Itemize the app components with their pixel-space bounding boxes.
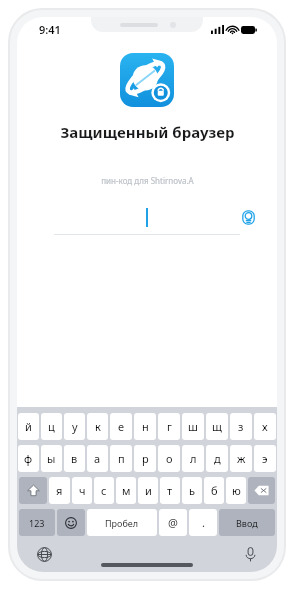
staticText: у xyxy=(72,419,78,434)
staticText: ь xyxy=(189,483,195,498)
button[interactable]: Сменить язык xyxy=(33,543,55,565)
staticText: б xyxy=(211,483,218,498)
staticText: х xyxy=(262,419,268,434)
button[interactable]: й xyxy=(18,413,39,440)
staticText: р xyxy=(142,451,149,466)
staticText: и xyxy=(145,483,152,498)
staticText: ф xyxy=(24,451,33,466)
button[interactable]: ы xyxy=(41,445,62,472)
staticText: Пробел xyxy=(105,517,139,529)
staticText: ш xyxy=(188,419,198,434)
staticText: л xyxy=(190,451,197,466)
button[interactable]: ф xyxy=(18,445,39,472)
staticText: п xyxy=(118,451,125,466)
button[interactable]: Эмодзи xyxy=(57,509,85,536)
button[interactable]: м xyxy=(116,477,136,504)
staticText: 123 xyxy=(29,517,45,529)
button[interactable]: л xyxy=(182,445,204,472)
staticText: Ввод xyxy=(236,517,258,529)
staticText: о xyxy=(166,451,173,466)
button[interactable]: ь xyxy=(182,477,202,504)
staticText: г xyxy=(167,419,172,434)
button[interactable]: Ввод xyxy=(219,509,275,536)
staticText: э xyxy=(262,451,268,466)
staticText: ж xyxy=(237,451,246,466)
staticText: Защищенный браузер xyxy=(60,122,235,142)
button[interactable]: ж xyxy=(230,445,252,472)
button[interactable]: х xyxy=(254,413,276,440)
staticText: е xyxy=(118,419,125,434)
button[interactable]: э xyxy=(254,445,276,472)
staticText: @ xyxy=(168,515,178,530)
button[interactable]: Биометрия xyxy=(237,206,259,228)
staticText: ц xyxy=(48,419,55,434)
staticText: пин-код для Shtirnova.A xyxy=(101,175,194,186)
staticText: я xyxy=(56,483,63,498)
button[interactable]: Пробел xyxy=(87,509,157,536)
button[interactable]: @ xyxy=(159,509,187,536)
button[interactable]: к xyxy=(87,413,108,440)
button[interactable]: т xyxy=(160,477,180,504)
button[interactable]: у xyxy=(64,413,85,440)
staticText: в xyxy=(71,451,78,466)
button[interactable]: ю xyxy=(226,477,246,504)
button[interactable]: ц xyxy=(41,413,62,440)
button[interactable]: ч xyxy=(72,477,92,504)
staticText: н xyxy=(142,419,149,434)
button[interactable]: Удалить xyxy=(248,477,275,504)
button[interactable]: н xyxy=(134,413,156,440)
button[interactable]: я xyxy=(49,477,70,504)
button[interactable]: Защищенный браузер xyxy=(120,53,174,107)
button[interactable]: б xyxy=(204,477,224,504)
staticText: . xyxy=(202,515,205,530)
staticText: а xyxy=(94,451,101,466)
staticText: ы xyxy=(47,451,56,466)
staticText: ч xyxy=(79,483,86,498)
staticText: 9:41 xyxy=(39,22,61,37)
staticText: д xyxy=(214,451,221,466)
button[interactable]: е xyxy=(110,413,132,440)
staticText: т xyxy=(167,483,173,498)
button[interactable]: и xyxy=(138,477,158,504)
button[interactable]: п xyxy=(110,445,132,472)
staticText: й xyxy=(25,419,32,434)
button[interactable]: Shift xyxy=(19,477,47,504)
button[interactable]: з xyxy=(230,413,252,440)
staticText: с xyxy=(101,483,107,498)
button[interactable]: в xyxy=(64,445,85,472)
button[interactable]: Диктовка xyxy=(239,543,261,565)
button[interactable]: 123 xyxy=(19,509,55,536)
button[interactable]: о xyxy=(158,445,180,472)
button[interactable]: а xyxy=(87,445,108,472)
staticText: щ xyxy=(212,419,222,434)
button[interactable]: Точка xyxy=(189,509,217,536)
button[interactable]: щ xyxy=(206,413,228,440)
staticText: к xyxy=(95,419,101,434)
button[interactable]: р xyxy=(134,445,156,472)
staticText: ю xyxy=(232,483,241,498)
button[interactable]: с xyxy=(94,477,114,504)
staticText: з xyxy=(238,419,244,434)
button[interactable]: г xyxy=(158,413,180,440)
button[interactable]: д xyxy=(206,445,228,472)
staticText: м xyxy=(122,483,131,498)
button[interactable]: ш xyxy=(182,413,204,440)
